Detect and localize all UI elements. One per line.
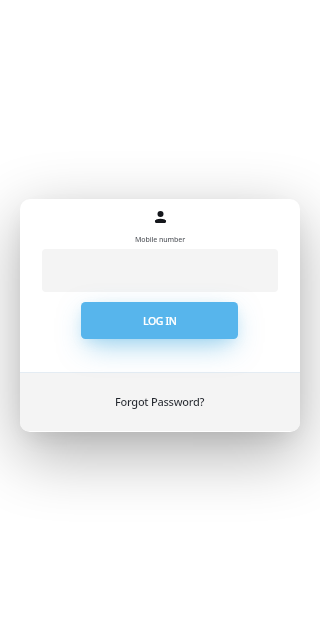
staticText: LOG IN (143, 314, 177, 328)
other: Account (155, 211, 166, 223)
button[interactable]: Forgot Password? (20, 373, 300, 431)
button[interactable]: LOG IN (81, 302, 238, 339)
staticText: Mobile number (135, 235, 186, 245)
staticText: Forgot Password? (115, 394, 205, 409)
